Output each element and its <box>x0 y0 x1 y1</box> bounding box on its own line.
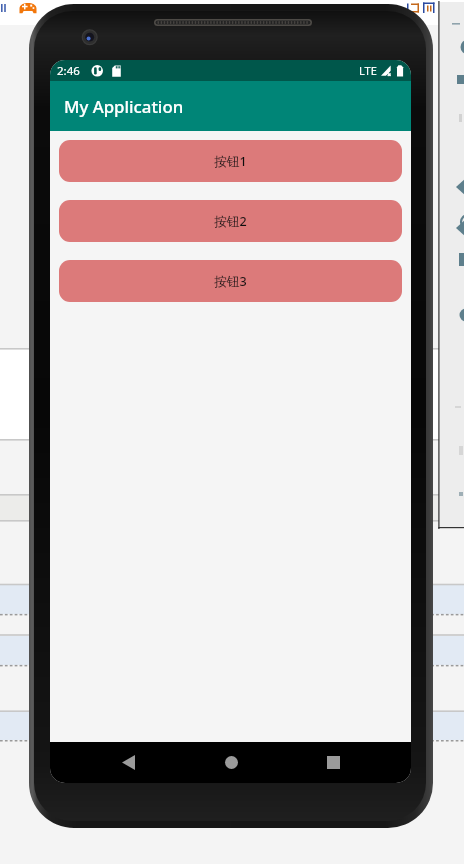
staticText: 按钮2 <box>214 213 247 230</box>
staticText: LTE <box>359 63 377 78</box>
button[interactable]: Back <box>104 742 152 783</box>
staticText: My Application <box>64 95 184 118</box>
staticText: 按钮1 <box>214 153 247 170</box>
button[interactable]: 按钮1 <box>59 140 402 182</box>
staticText: 2:46 <box>57 63 80 79</box>
button[interactable]: 按钮3 <box>59 260 402 302</box>
button[interactable]: Home <box>207 742 255 783</box>
button[interactable]: 按钮2 <box>59 200 402 242</box>
staticText: 按钮3 <box>214 273 247 290</box>
button[interactable]: Recents <box>309 742 357 783</box>
